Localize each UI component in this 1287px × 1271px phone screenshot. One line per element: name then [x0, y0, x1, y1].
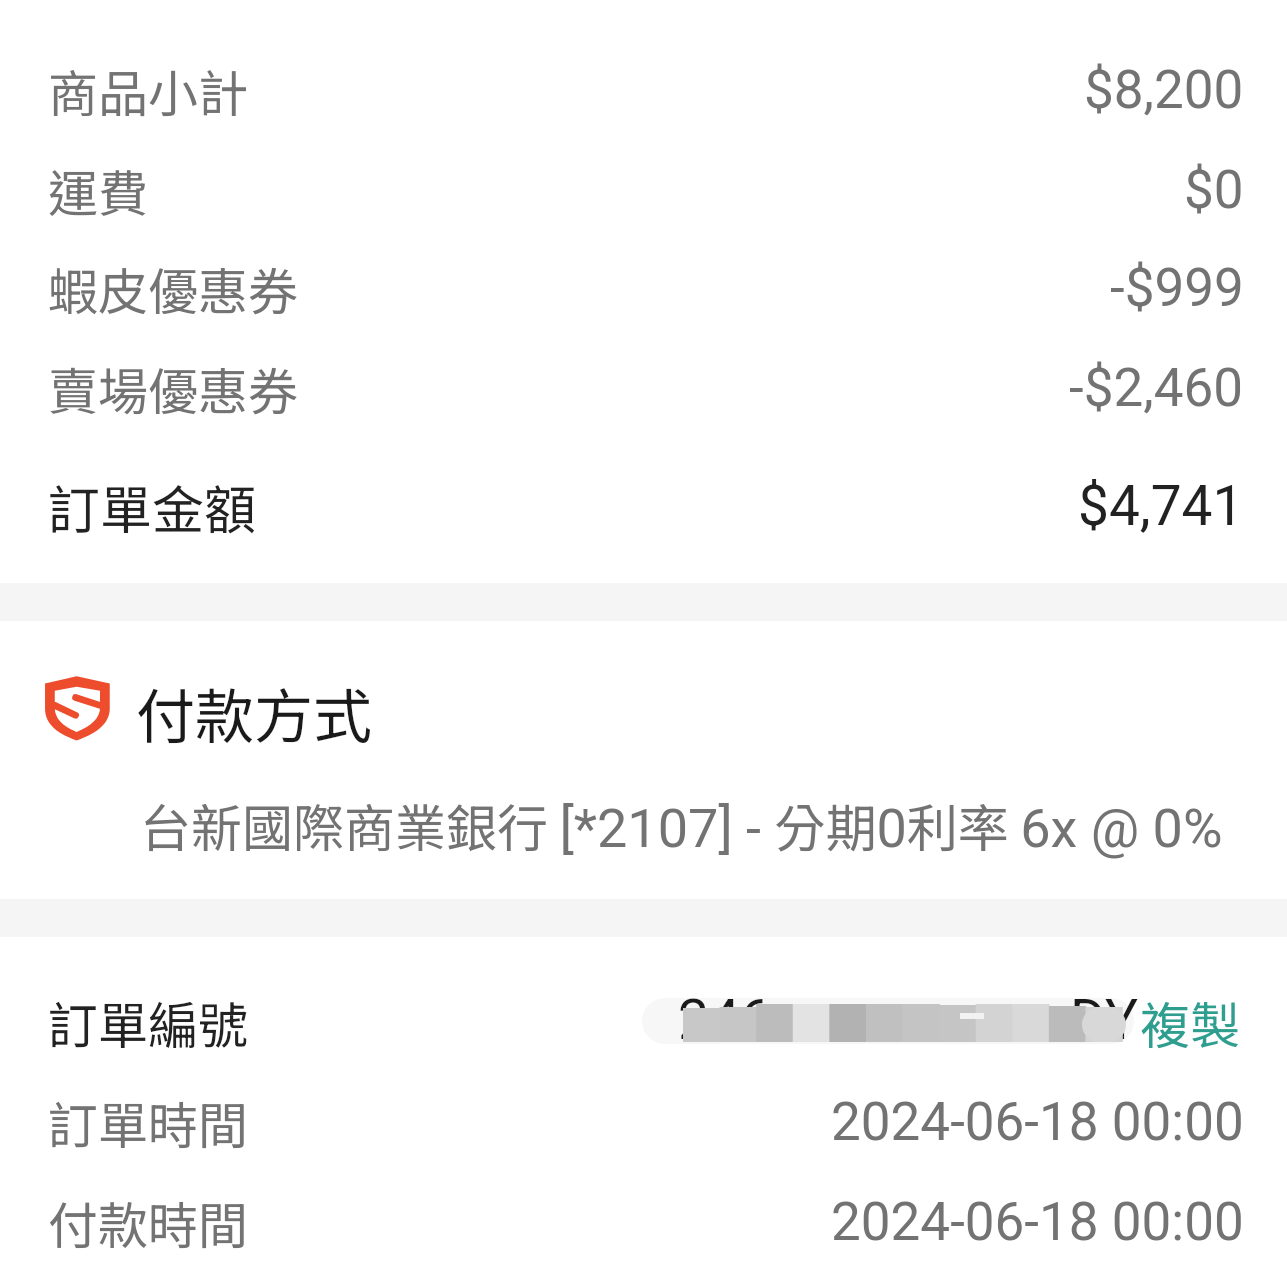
- button[interactable]: 訂單金額: [0, 468, 1287, 544]
- staticText: 2024-06-18 00:00: [831, 1191, 1244, 1253]
- staticText: 訂單編號: [48, 986, 248, 1058]
- staticText: 付款方式: [136, 670, 373, 754]
- staticText: 賣場優惠券: [48, 352, 298, 424]
- button[interactable]: 運費: [0, 152, 1287, 228]
- button[interactable]: 付款時間: [0, 1184, 1287, 1260]
- staticText: -$2,460: [1069, 357, 1244, 419]
- button[interactable]: 複製: [1140, 986, 1240, 1058]
- button[interactable]: Shopee guarantee: [0, 668, 1287, 752]
- staticText: 246: [678, 988, 771, 1052]
- staticText: -$999: [1110, 257, 1244, 319]
- staticText: DY: [1070, 988, 1138, 1052]
- staticText: 付款時間: [48, 1186, 248, 1258]
- button[interactable]: 商品小計: [0, 52, 1287, 128]
- staticText: $4,741: [1078, 474, 1244, 538]
- staticText: 商品小計: [48, 54, 248, 126]
- staticText: $0: [1184, 159, 1244, 221]
- other: Shopee guarantee: [40, 670, 115, 744]
- staticText: $8,200: [1084, 59, 1244, 121]
- button[interactable]: [0, 965, 1287, 1057]
- staticText: 運費: [48, 154, 148, 226]
- staticText: 訂單時間: [48, 1086, 248, 1158]
- staticText: 2024-06-18 00:00: [831, 1091, 1244, 1153]
- staticText: 台新國際商業銀行 [*2107] - 分期0利率 6x @ 0%: [140, 788, 1223, 862]
- button[interactable]: 蝦皮優惠券: [0, 250, 1287, 326]
- staticText: 蝦皮優惠券: [48, 252, 298, 324]
- button[interactable]: 訂單時間: [0, 1084, 1287, 1160]
- staticText: 訂單金額: [48, 469, 257, 544]
- button[interactable]: 賣場優惠券: [0, 350, 1287, 426]
